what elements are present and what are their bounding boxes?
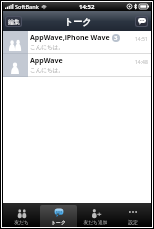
button[interactable]: AppWave,iPhone Wave: [3, 31, 151, 54]
staticText: 3: [114, 34, 118, 42]
staticText: SoftBank: [15, 3, 39, 10]
staticText: トーク: [64, 16, 92, 27]
staticText: 編集: [8, 18, 20, 26]
button[interactable]: New chat: [136, 17, 147, 26]
staticText: 友だち追加: [83, 219, 108, 225]
button[interactable]: 編集: [6, 17, 21, 26]
staticText: 友だち: [14, 219, 29, 225]
button[interactable]: 友だち: [3, 205, 40, 227]
staticText: 14:52: [79, 3, 95, 11]
button[interactable]: 設定: [114, 205, 151, 227]
staticText: こんにちは。: [30, 67, 64, 74]
button[interactable]: AppWave: [3, 54, 151, 77]
staticText: AppWave: [30, 56, 63, 66]
staticText: 14:48: [135, 59, 148, 66]
button[interactable]: 友だち追加: [77, 205, 114, 227]
staticText: 設定: [128, 219, 138, 225]
staticText: こんにちは。: [30, 44, 64, 51]
staticText: AppWave,iPhone Wave: [30, 33, 110, 43]
staticText: 14:51: [135, 36, 148, 43]
button[interactable]: トーク: [40, 205, 77, 227]
staticText: トーク: [51, 219, 66, 225]
